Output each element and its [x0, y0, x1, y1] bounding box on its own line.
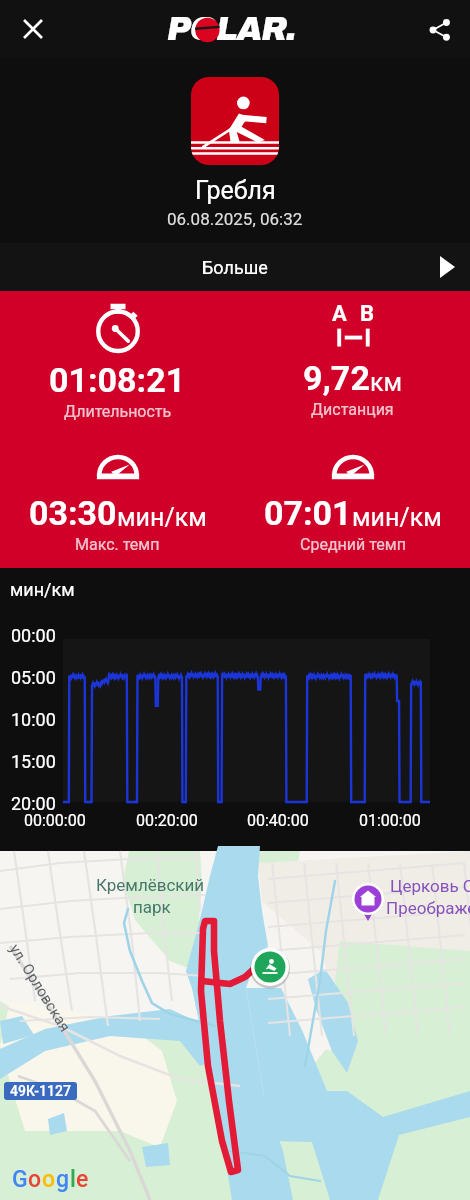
staticText: 00:00:00: [24, 811, 86, 830]
staticText: 49К-1127: [10, 1083, 71, 1099]
staticText: A: [332, 301, 347, 327]
staticText: 07:01: [264, 493, 352, 533]
staticText: 06.08.2025, 06:32: [167, 209, 303, 229]
staticText: 00:40:00: [247, 811, 309, 830]
staticText: Макс. темп: [75, 535, 160, 554]
staticText: g: [56, 1166, 70, 1193]
staticText: Церковь С: [390, 876, 470, 896]
staticText: l: [70, 1166, 76, 1193]
staticText: o: [42, 1166, 56, 1193]
button[interactable]: Больше: [0, 243, 470, 291]
staticText: POLAR.: [167, 11, 296, 47]
staticText: o: [28, 1166, 42, 1193]
staticText: мин/км: [10, 579, 75, 600]
staticText: ул. Орловская: [6, 941, 74, 1035]
staticText: км: [370, 368, 403, 397]
staticText: 00:00: [11, 625, 56, 646]
staticText: Больше: [202, 257, 268, 278]
staticText: G: [12, 1166, 28, 1193]
staticText: Средний темп: [300, 535, 406, 554]
staticText: Преображе: [386, 898, 470, 918]
staticText: 9,72: [303, 358, 370, 398]
button[interactable]: Close: [11, 7, 55, 51]
staticText: Гребля: [195, 176, 276, 205]
staticText: мин/км: [117, 503, 207, 532]
staticText: мин/км: [352, 503, 442, 532]
staticText: 01:00:00: [359, 811, 421, 830]
staticText: парк: [133, 897, 171, 917]
staticText: 03:30: [29, 493, 117, 533]
staticText: 05:00: [11, 667, 56, 688]
staticText: 00:20:00: [136, 811, 198, 830]
staticText: Длительность: [64, 402, 172, 421]
staticText: Дистанция: [311, 400, 394, 419]
staticText: e: [76, 1166, 89, 1193]
staticText: B: [360, 301, 375, 327]
button[interactable]: Share: [417, 7, 461, 51]
staticText: Кремлёвский: [96, 875, 205, 895]
staticText: 15:00: [11, 751, 56, 772]
staticText: 01:08:21: [49, 360, 186, 400]
staticText: 20:00: [11, 793, 56, 814]
staticText: 10:00: [11, 709, 56, 730]
